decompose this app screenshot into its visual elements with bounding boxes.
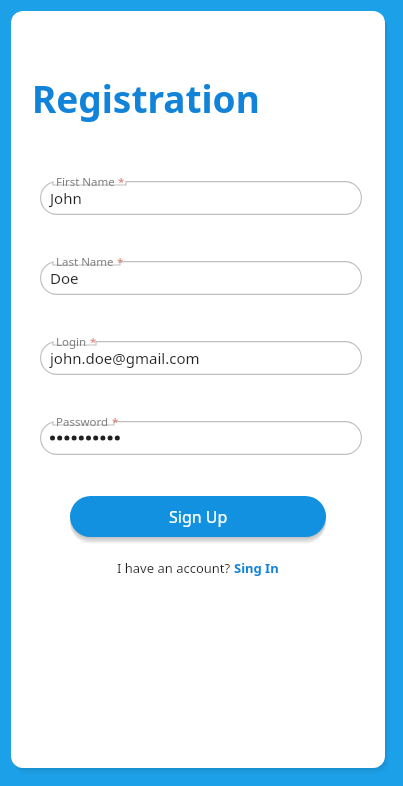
staticText: * xyxy=(112,414,119,430)
staticText: Sign Up xyxy=(169,506,228,528)
staticText: * xyxy=(118,174,125,190)
staticText: Registration xyxy=(32,73,260,123)
staticText: First Name xyxy=(56,174,115,190)
staticText: Last Name xyxy=(56,254,114,270)
staticText: I have an account? xyxy=(117,559,234,577)
staticText: * xyxy=(90,334,97,350)
staticText: Login xyxy=(56,334,87,350)
button[interactable]: Login xyxy=(40,341,362,375)
staticText: Doe xyxy=(50,268,79,288)
button[interactable]: First Name xyxy=(40,181,362,215)
staticText: * xyxy=(117,254,124,270)
button[interactable]: Sing In xyxy=(234,559,279,577)
button[interactable]: Password xyxy=(40,421,362,455)
button[interactable]: Last Name xyxy=(40,261,362,295)
button[interactable]: Sign Up xyxy=(70,496,326,537)
staticText: john.doe@gmail.com xyxy=(50,348,200,368)
staticText: John xyxy=(50,188,82,208)
staticText: Password xyxy=(56,414,109,430)
staticText: Sing In xyxy=(234,559,279,577)
